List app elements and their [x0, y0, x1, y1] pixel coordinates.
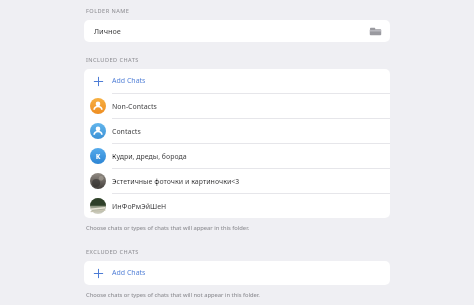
- staticText: Add Chats: [112, 76, 146, 86]
- staticText: ИнФоРмЭйШеН: [112, 202, 167, 211]
- button[interactable]: Add Chats: [84, 69, 390, 93]
- staticText: Contacts: [112, 127, 141, 136]
- staticText: Choose chats or types of chats that will…: [86, 224, 250, 232]
- staticText: Choose chats or types of chats that will…: [86, 291, 260, 299]
- button[interactable]: К: [84, 144, 390, 168]
- staticText: Эстетичные фоточки и картиночки<3: [112, 177, 240, 186]
- button[interactable]: Non-Contacts: [84, 94, 390, 118]
- staticText: EXCLUDED CHATS: [86, 248, 139, 256]
- staticText: INCLUDED CHATS: [86, 56, 139, 64]
- button[interactable]: Эстетичные фоточки и картиночки<3: [84, 169, 390, 193]
- staticText: Non-Contacts: [112, 102, 157, 111]
- staticText: FOLDER NAME: [86, 7, 130, 15]
- button[interactable]: Add Chats: [84, 261, 390, 285]
- button[interactable]: Личное: [84, 20, 390, 42]
- staticText: Личное: [94, 26, 121, 36]
- staticText: Add Chats: [112, 268, 146, 278]
- button[interactable]: Contacts: [84, 119, 390, 143]
- staticText: К: [96, 152, 101, 161]
- other: Folder icon: [367, 23, 383, 39]
- button[interactable]: ИнФоРмЭйШеН: [84, 194, 390, 218]
- staticText: Кудри, дреды, борода: [112, 152, 187, 161]
